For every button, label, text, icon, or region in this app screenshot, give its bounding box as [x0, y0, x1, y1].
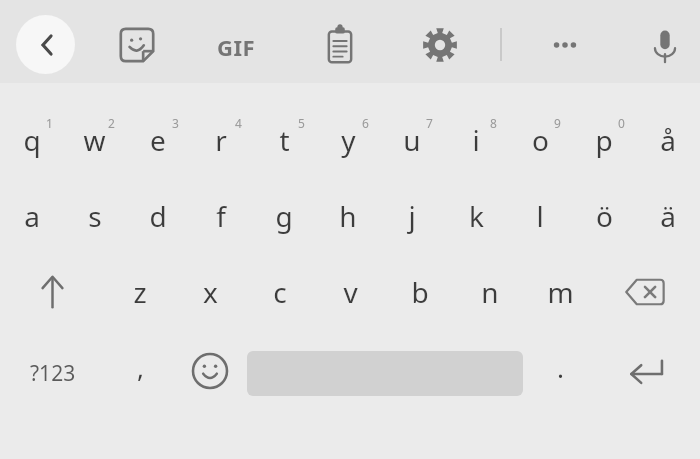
staticText: GIF: [217, 32, 256, 62]
staticText: 6: [362, 115, 369, 131]
staticText: x: [203, 273, 218, 311]
button[interactable]: h: [316, 178, 380, 254]
staticText: ö: [596, 197, 613, 235]
button[interactable]: f: [189, 178, 252, 254]
button[interactable]: b: [385, 254, 455, 330]
staticText: w: [83, 121, 106, 159]
button[interactable]: ,: [105, 330, 175, 416]
button[interactable]: y: [316, 102, 380, 178]
staticText: ä: [660, 197, 676, 235]
button[interactable]: å: [636, 102, 700, 178]
button[interactable]: c: [245, 254, 315, 330]
staticText: c: [273, 273, 287, 311]
staticText: e: [150, 121, 166, 159]
button[interactable]: ä: [636, 178, 700, 254]
staticText: 0: [618, 115, 625, 131]
staticText: å: [660, 121, 676, 159]
button[interactable]: n: [455, 254, 525, 330]
button[interactable]: Clipboard: [313, 18, 367, 72]
staticText: q: [23, 121, 41, 159]
button[interactable]: ö: [572, 178, 636, 254]
staticText: 8: [490, 115, 497, 131]
button[interactable]: u: [380, 102, 444, 178]
staticText: j: [408, 197, 416, 235]
button[interactable]: GIF: [207, 18, 265, 76]
staticText: n: [481, 273, 499, 311]
button[interactable]: z: [105, 254, 175, 330]
staticText: b: [411, 273, 429, 311]
staticText: i: [472, 121, 480, 159]
staticText: y: [341, 121, 356, 159]
button[interactable]: Stickers: [110, 18, 164, 72]
button[interactable]: Backspace: [595, 254, 700, 330]
staticText: ?123: [30, 359, 76, 388]
button[interactable]: Settings: [413, 18, 467, 72]
staticText: k: [469, 197, 484, 235]
staticText: 2: [108, 115, 115, 131]
staticText: o: [532, 121, 549, 159]
staticText: g: [275, 197, 293, 235]
button[interactable]: t: [252, 102, 316, 178]
button[interactable]: Emoji: [175, 330, 245, 416]
button[interactable]: j: [380, 178, 444, 254]
button[interactable]: ?123: [0, 330, 105, 416]
staticText: f: [216, 197, 226, 235]
button[interactable]: m: [525, 254, 595, 330]
button[interactable]: p: [572, 102, 636, 178]
staticText: m: [547, 273, 574, 311]
button[interactable]: i: [444, 102, 508, 178]
button[interactable]: s: [63, 178, 126, 254]
staticText: s: [88, 197, 102, 235]
staticText: t: [279, 121, 290, 159]
button[interactable]: Voice input: [638, 18, 692, 72]
button[interactable]: v: [315, 254, 385, 330]
staticText: .: [557, 350, 564, 385]
button[interactable]: Back: [16, 15, 75, 74]
button[interactable]: x: [175, 254, 245, 330]
staticText: v: [343, 273, 358, 311]
staticText: a: [24, 197, 40, 235]
button[interactable]: d: [126, 178, 189, 254]
staticText: p: [595, 121, 613, 159]
staticText: 5: [298, 115, 305, 131]
button[interactable]: e: [126, 102, 189, 178]
button[interactable]: k: [444, 178, 508, 254]
button[interactable]: .: [525, 330, 595, 416]
staticText: d: [149, 197, 167, 235]
button[interactable]: g: [252, 178, 316, 254]
button[interactable]: w: [63, 102, 126, 178]
staticText: 4: [235, 115, 242, 131]
button[interactable]: a: [0, 178, 63, 254]
staticText: 7: [426, 115, 433, 131]
staticText: ,: [137, 350, 144, 385]
staticText: z: [133, 273, 147, 311]
staticText: 3: [172, 115, 179, 131]
button[interactable]: q: [0, 102, 63, 178]
button[interactable]: o: [508, 102, 572, 178]
staticText: 1: [46, 115, 53, 131]
button[interactable]: Shift: [0, 254, 105, 330]
button[interactable]: r: [189, 102, 252, 178]
staticText: h: [339, 197, 357, 235]
staticText: r: [215, 121, 227, 159]
button[interactable]: l: [508, 178, 572, 254]
button[interactable]: Enter: [595, 330, 700, 416]
staticText: 9: [554, 115, 561, 131]
staticText: l: [536, 197, 544, 235]
staticText: u: [403, 121, 421, 159]
button[interactable]: More options: [538, 18, 592, 72]
